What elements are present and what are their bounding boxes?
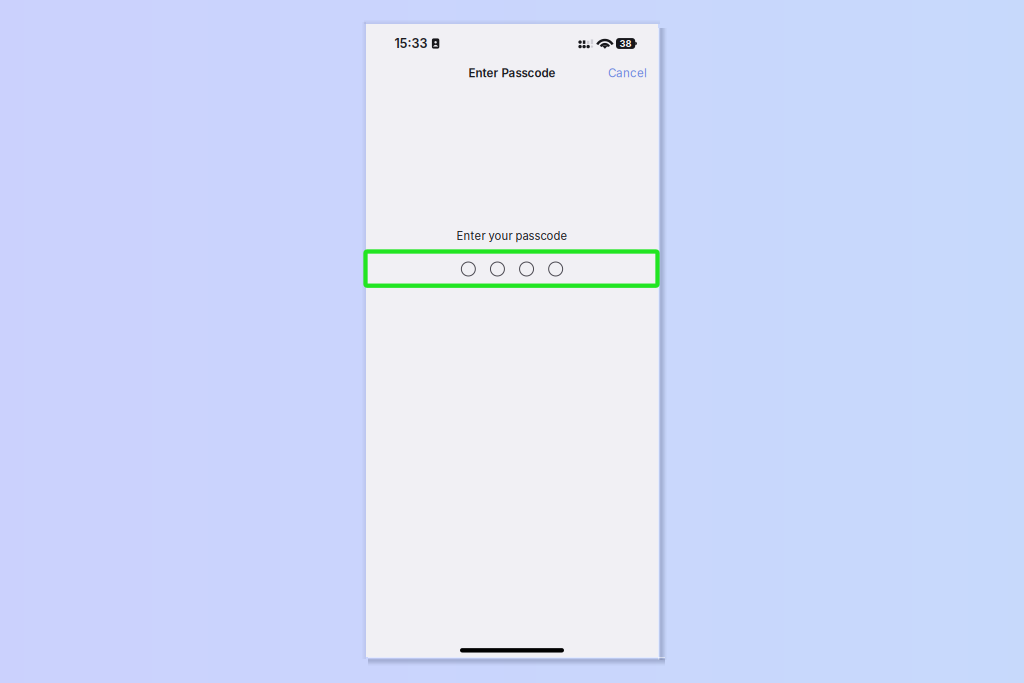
staticText: Enter Passcode	[468, 66, 555, 80]
button[interactable]: Cancel	[602, 60, 653, 86]
staticText: Cancel	[608, 66, 647, 80]
button[interactable]: Passcode entry field	[366, 254, 658, 284]
staticText: Enter your passcode	[456, 229, 567, 243]
staticText: 15:33	[394, 36, 427, 51]
staticText: 38	[620, 38, 632, 49]
